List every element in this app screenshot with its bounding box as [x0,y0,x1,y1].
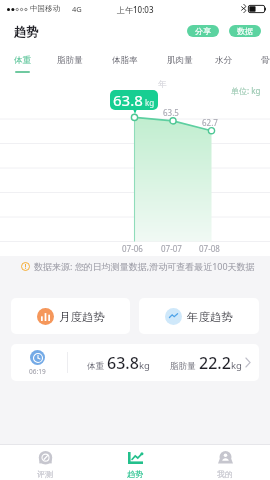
staticText: kg [145,97,155,108]
staticText: 63.8 [107,352,139,374]
staticText: 趋势 [14,24,38,39]
staticText: 体重 [87,361,104,372]
button[interactable]: 肌肉量 [153,44,206,78]
staticText: 数据来源: 您的日均测量数据,滑动可查看最近100天数据 [34,260,255,272]
staticText: 63.5 [163,107,179,118]
staticText: 我的 [217,469,233,479]
button[interactable]: 数据 [229,25,261,37]
staticText: 评测 [37,469,53,479]
button[interactable]: 分享 [187,25,219,37]
staticText: 63.8 [113,90,143,110]
staticText: 肌肉量 [167,55,193,66]
staticText: 07-07 [161,243,182,254]
staticText: 体重 [14,55,31,66]
button[interactable]: 年度趋势 [139,298,259,334]
staticText: 水分 [215,55,232,66]
staticText: kg [139,359,150,372]
button[interactable]: 评测 [0,445,90,480]
staticText: 骨骼 [261,55,270,66]
staticText: 脂肪量 [57,55,83,66]
button[interactable]: 月度趋势 [11,298,130,334]
staticText: kg [231,359,242,372]
staticText: 07-06 [122,243,143,254]
staticText: 分享 [195,26,211,36]
button[interactable]: 骨骼 [248,44,270,78]
staticText: 上午10:03 [117,4,154,15]
staticText: 体脂率 [112,55,138,66]
staticText: 07-08 [199,243,220,254]
button[interactable]: 体重 [1,44,44,78]
button[interactable]: 体脂率 [99,44,151,78]
button[interactable]: 06:19 [11,344,259,381]
staticText: 单位: kg [231,85,261,96]
staticText: 年度趋势 [187,310,233,324]
staticText: 中国移动 [30,4,60,13]
button[interactable]: 脂肪量 [44,44,95,78]
staticText: 22.2 [199,352,231,374]
staticText: 62.7 [202,117,218,128]
staticText: 月度趋势 [59,310,105,324]
button[interactable]: 趋势 [90,445,180,480]
staticText: 数据 [237,26,253,36]
staticText: 年 [158,79,167,90]
staticText: 趋势 [127,469,143,479]
button[interactable]: 水分 [202,44,245,78]
staticText: 4G [72,4,82,14]
button[interactable]: 我的 [180,445,270,480]
other: 查看详情 [245,358,251,367]
staticText: 06:19 [29,367,46,376]
staticText: 脂肪量 [170,361,196,372]
